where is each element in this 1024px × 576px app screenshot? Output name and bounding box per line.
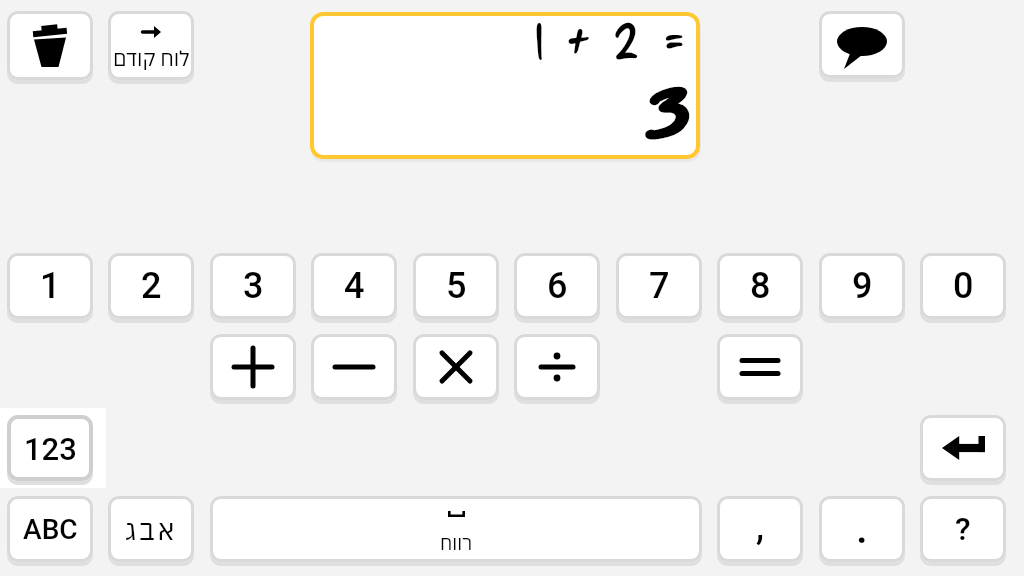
button[interactable]: 8 <box>717 253 803 319</box>
button[interactable]: 3 <box>210 253 296 319</box>
staticText: 4 <box>344 265 365 307</box>
button[interactable] <box>717 334 803 400</box>
button[interactable]: 5 <box>413 253 499 319</box>
button[interactable] <box>311 334 397 400</box>
button[interactable]: לוח קודם <box>108 11 194 80</box>
button[interactable]: 6 <box>514 253 600 319</box>
staticText: לוח קודם <box>113 44 190 71</box>
staticText: . <box>856 504 868 553</box>
button[interactable] <box>819 11 905 78</box>
staticText: 8 <box>750 265 771 307</box>
staticText: 1 <box>40 265 61 307</box>
staticText: 123 <box>24 431 77 467</box>
button[interactable]: רווח <box>210 496 702 562</box>
staticText: , <box>756 506 764 548</box>
staticText: 6 <box>547 265 568 307</box>
staticText: 9 <box>852 265 873 307</box>
button[interactable]: 9 <box>819 253 905 319</box>
staticText: אבג <box>125 511 178 547</box>
button[interactable]: , <box>717 496 803 562</box>
staticText: ? <box>955 510 971 548</box>
button[interactable]: 123 <box>7 415 93 481</box>
button[interactable] <box>310 12 700 159</box>
staticText: 3 <box>243 265 264 307</box>
staticText: 7 <box>649 265 670 307</box>
button[interactable]: 1 <box>7 253 93 319</box>
button[interactable] <box>413 334 499 400</box>
staticText: רווח <box>440 531 473 556</box>
staticText: 0 <box>953 265 974 307</box>
button[interactable] <box>514 334 600 400</box>
button[interactable]: 0 <box>920 253 1006 319</box>
button[interactable]: 7 <box>616 253 702 319</box>
button[interactable] <box>7 11 93 80</box>
button[interactable]: 4 <box>311 253 397 319</box>
button[interactable]: . <box>819 496 905 562</box>
button[interactable]: ? <box>920 496 1006 562</box>
button[interactable]: אבג <box>108 496 194 562</box>
button[interactable]: ABC <box>7 496 93 562</box>
button[interactable]: 2 <box>108 253 194 319</box>
staticText: 5 <box>446 265 467 307</box>
staticText: ABC <box>23 513 78 546</box>
staticText: 2 <box>141 265 162 307</box>
button[interactable] <box>210 334 296 400</box>
button[interactable] <box>920 415 1006 481</box>
